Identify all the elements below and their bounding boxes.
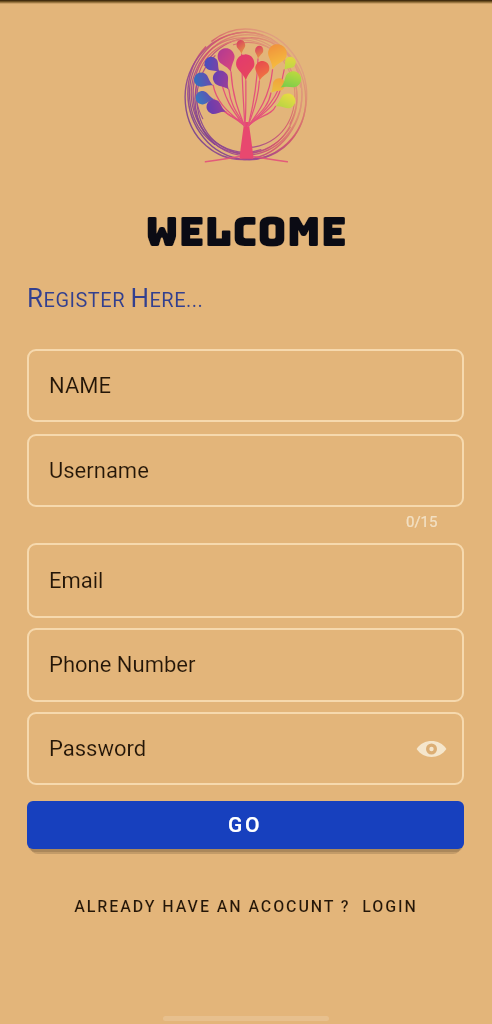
staticText: Phone Number <box>49 652 196 678</box>
button[interactable]: Password <box>27 712 464 785</box>
button[interactable]: Email <box>27 543 464 618</box>
staticText: REGISTER HERE... <box>27 283 204 313</box>
staticText: 0/15 <box>406 513 438 531</box>
staticText: WELCOME <box>0 205 492 258</box>
staticText: GO <box>228 813 263 838</box>
button[interactable]: GO <box>27 801 464 849</box>
other: Show password <box>416 738 447 760</box>
staticText: Email <box>49 568 104 594</box>
staticText: NAME <box>49 373 111 399</box>
button[interactable]: Username <box>27 434 464 507</box>
button[interactable]: Phone Number <box>27 628 464 702</box>
staticText: Username <box>49 458 149 484</box>
staticText: Password <box>49 736 147 762</box>
button[interactable]: ALREADY HAVE AN ACOCUNT ? LOGIN <box>0 897 492 916</box>
button[interactable]: NAME <box>27 349 464 422</box>
